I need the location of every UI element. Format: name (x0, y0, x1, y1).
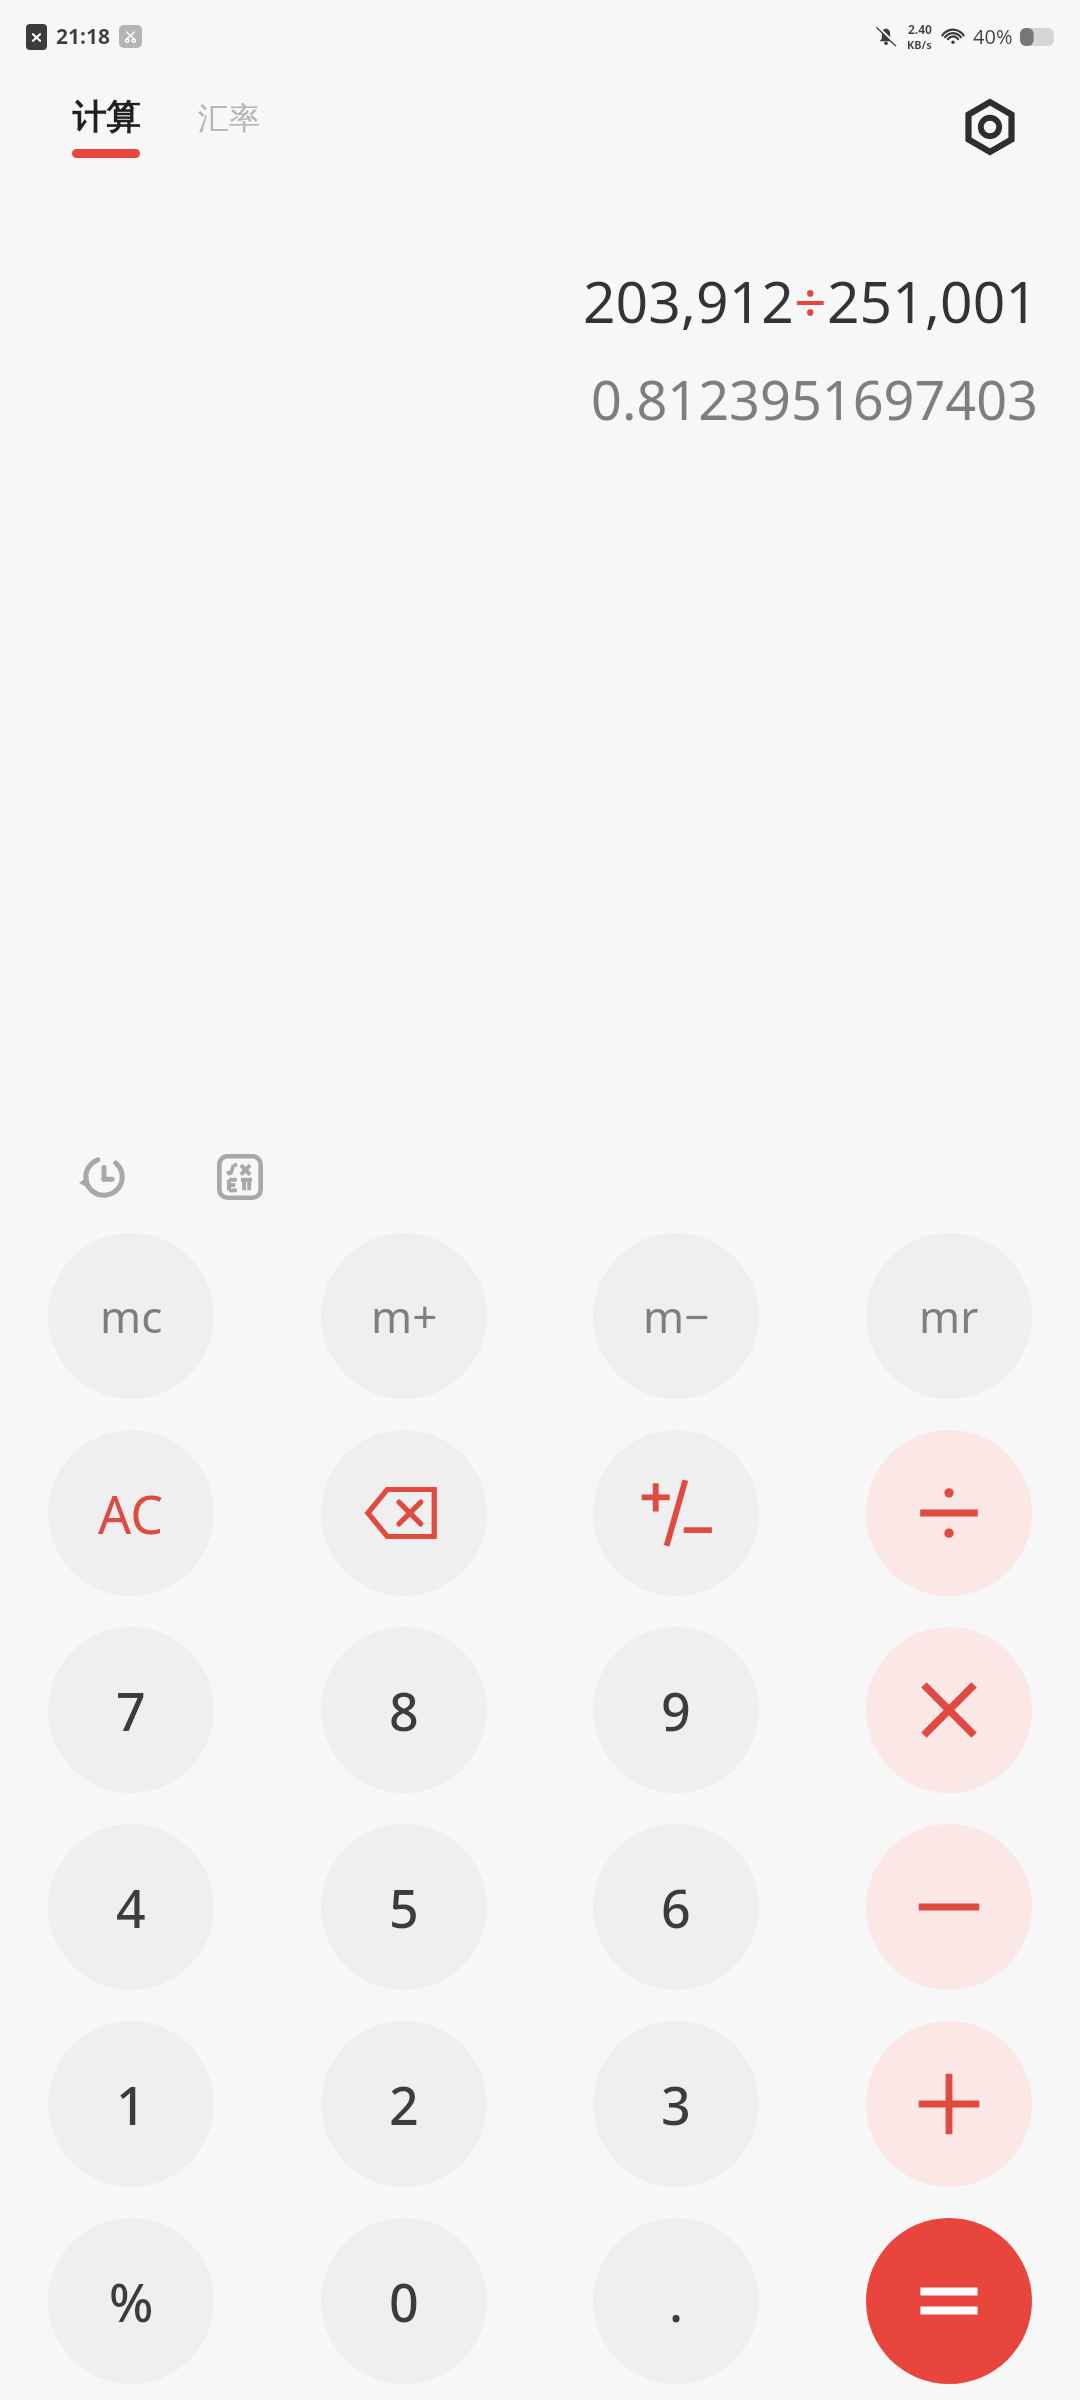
staticText: 汇率 (198, 99, 260, 138)
staticText: % (109, 2266, 154, 2337)
button[interactable]: Plus (866, 2021, 1032, 2187)
staticText: ÷ (794, 262, 827, 340)
button[interactable]: 3 (593, 2021, 759, 2187)
staticText: 4 (116, 1872, 146, 1943)
button[interactable]: Multiply (866, 1627, 1032, 1793)
staticText: 3 (661, 2069, 691, 2140)
staticText: KB/s (907, 37, 932, 52)
button[interactable]: 5 (321, 1824, 487, 1990)
staticText: 9 (661, 1675, 691, 1746)
staticText: 21:18 (56, 22, 110, 51)
staticText: 251,001 (827, 262, 1038, 340)
button[interactable]: 计算 (68, 96, 144, 158)
staticText: m− (643, 1286, 710, 1346)
button[interactable]: 4 (48, 1824, 214, 1990)
staticText: mr (919, 1286, 979, 1346)
staticText: 6 (661, 1872, 691, 1943)
staticText: . (669, 2266, 684, 2337)
button[interactable]: 9 (593, 1627, 759, 1793)
button[interactable]: 8 (321, 1627, 487, 1793)
button[interactable]: 汇率 (194, 102, 264, 153)
button[interactable]: m− (593, 1233, 759, 1399)
button[interactable]: mr (866, 1233, 1032, 1399)
button[interactable]: Settings (952, 89, 1028, 165)
button[interactable]: 7 (48, 1627, 214, 1793)
button[interactable]: AC (48, 1430, 214, 1596)
staticText: 40% (973, 23, 1013, 50)
staticText: AC (98, 1478, 164, 1549)
staticText: 5 (389, 1872, 419, 1943)
staticText: 0.8123951697403 (591, 362, 1038, 436)
staticText: 8 (389, 1675, 419, 1746)
button[interactable]: History (70, 1143, 138, 1211)
staticText: 计算 (72, 96, 140, 139)
staticText: mc (100, 1286, 163, 1346)
button[interactable]: Equals (866, 2218, 1032, 2384)
button[interactable]: 0 (321, 2218, 487, 2384)
button[interactable]: Divide (866, 1430, 1032, 1596)
button[interactable]: 1 (48, 2021, 214, 2187)
staticText: m+ (371, 1286, 438, 1346)
staticText: 0 (389, 2266, 419, 2337)
button[interactable]: Minus (866, 1824, 1032, 1990)
button[interactable]: % (48, 2218, 214, 2384)
button[interactable]: . (593, 2218, 759, 2384)
button[interactable]: 2 (321, 2021, 487, 2187)
staticText: 7 (116, 1675, 146, 1746)
button[interactable]: 6 (593, 1824, 759, 1990)
button[interactable]: Toggle sign (593, 1430, 759, 1596)
button[interactable]: Backspace (321, 1430, 487, 1596)
staticText: 2 (389, 2069, 419, 2140)
button[interactable]: m+ (321, 1233, 487, 1399)
button[interactable]: Scientific (206, 1143, 274, 1211)
staticText: 1 (116, 2069, 146, 2140)
staticText: 2.40 (908, 21, 932, 37)
staticText: 203,912 (583, 262, 794, 340)
button[interactable]: mc (48, 1233, 214, 1399)
